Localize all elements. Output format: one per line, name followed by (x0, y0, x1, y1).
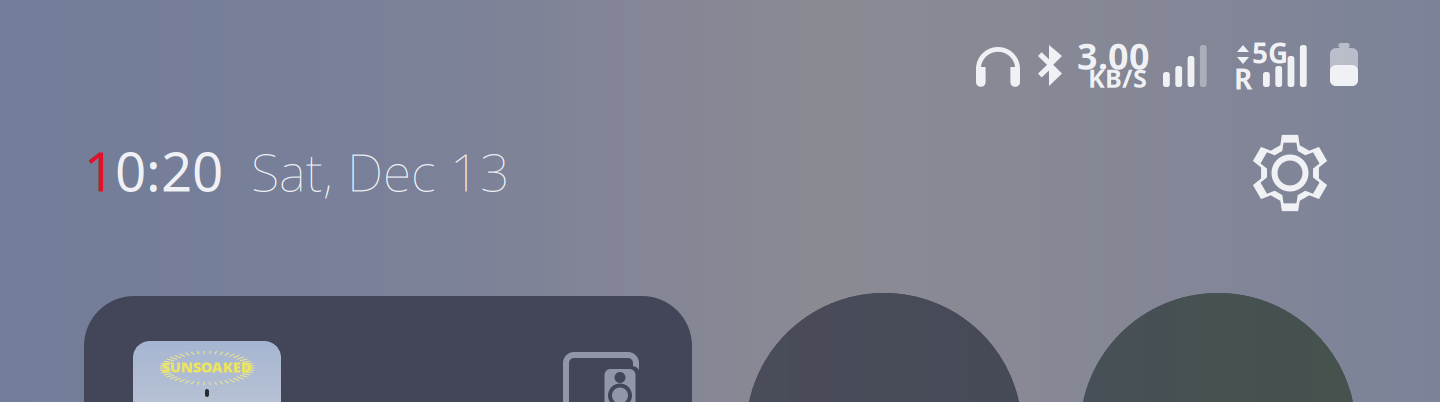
button[interactable]: Quick setting (746, 293, 1022, 402)
staticText: SUNSOAKED (162, 357, 252, 376)
staticText: 3.00 (1077, 32, 1150, 80)
staticText: R (1234, 60, 1252, 97)
button[interactable]: Output device (566, 355, 658, 402)
staticText: 0:20 (115, 134, 223, 207)
staticText: KB/S (1088, 61, 1147, 95)
button[interactable]: Quick setting (1080, 293, 1356, 402)
button[interactable]: Settings (1251, 134, 1329, 212)
staticText: 1 (84, 134, 115, 207)
staticText: 5G (1252, 34, 1288, 71)
staticText: Sat, Dec 13 (223, 137, 510, 206)
